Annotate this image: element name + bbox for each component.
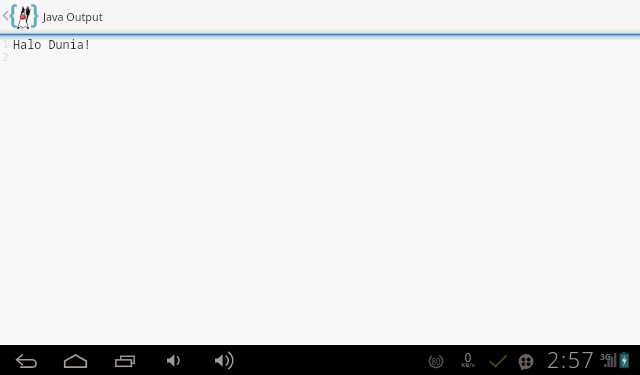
button[interactable]: Sync complete xyxy=(488,354,508,366)
button[interactable]: Java Output xyxy=(10,0,103,31)
button[interactable]: Volume down xyxy=(167,353,183,368)
staticText: 0 xyxy=(461,349,475,365)
button[interactable]: Volume up xyxy=(215,353,234,368)
button[interactable]: Battery 80 percent xyxy=(428,353,444,369)
button[interactable]: Clock xyxy=(545,347,597,375)
button[interactable]: Network speed xyxy=(458,348,478,372)
button[interactable]: Battery charging xyxy=(618,351,631,369)
button[interactable]: Navigate up xyxy=(0,0,10,31)
staticText: 1 xyxy=(0,37,11,50)
staticText: KB/s xyxy=(459,361,477,369)
button[interactable]: Back xyxy=(16,353,37,368)
button[interactable]: Mobile signal 3G xyxy=(599,350,618,373)
button[interactable]: Home xyxy=(63,353,88,369)
button[interactable]: Recent apps xyxy=(115,354,136,368)
button[interactable]: New message xyxy=(517,354,535,371)
staticText: Halo Dunia! xyxy=(13,36,91,49)
staticText: 2 xyxy=(0,50,11,63)
staticText: 80 xyxy=(431,356,441,367)
button[interactable]: 1 xyxy=(0,36,640,49)
staticText: 2:57 xyxy=(547,345,596,373)
staticText: Java Output xyxy=(43,9,103,24)
staticText: 3G xyxy=(600,351,612,363)
